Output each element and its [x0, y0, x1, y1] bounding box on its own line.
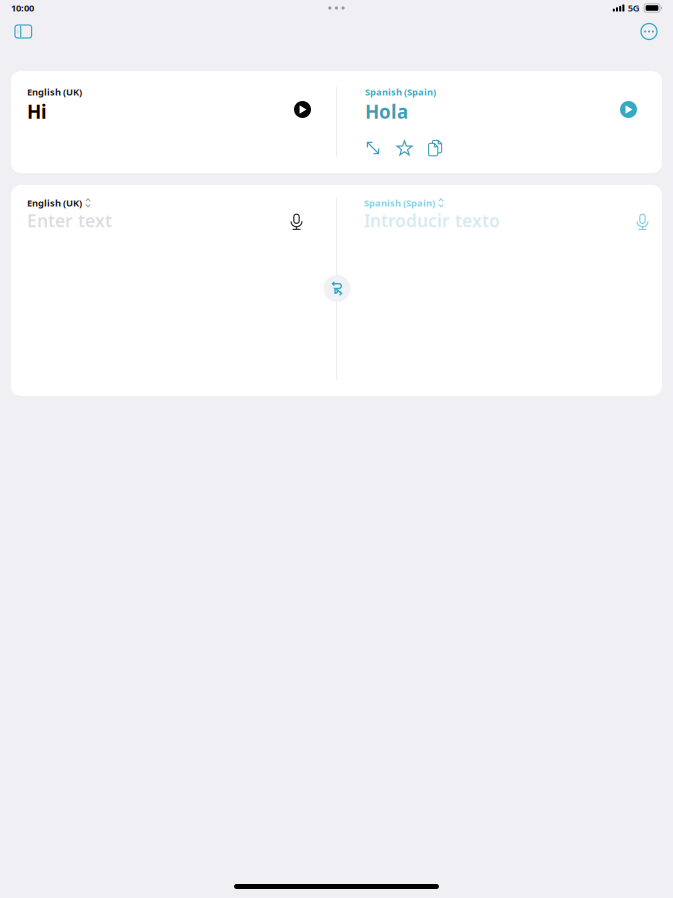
button[interactable]: Show Sidebar — [8, 18, 39, 45]
button[interactable]: Dictate English — [286, 210, 307, 234]
staticText: Hola — [365, 99, 408, 124]
button[interactable]: Copy — [428, 140, 444, 156]
staticText: Hi — [27, 99, 47, 124]
staticText: Enter text — [27, 209, 112, 232]
staticText: 5G — [628, 2, 640, 14]
staticText: Spanish (Spain) — [365, 86, 436, 98]
staticText: English (UK) — [27, 86, 82, 98]
staticText: 10:00 — [11, 2, 34, 14]
button[interactable]: Swap languages — [323, 275, 350, 302]
button[interactable]: More — [634, 16, 664, 46]
button[interactable]: Spanish (Spain) — [364, 197, 444, 209]
button[interactable]: Add to Favourites — [396, 140, 412, 156]
staticText: Introducir texto — [364, 209, 500, 232]
button[interactable]: Expand — [365, 140, 381, 156]
staticText: English (UK) — [27, 197, 82, 209]
button[interactable]: Dictate Spanish — [632, 210, 653, 234]
button[interactable]: Play Spanish — [618, 99, 639, 120]
button[interactable]: English (UK) — [27, 197, 91, 209]
staticText: Spanish (Spain) — [364, 197, 435, 209]
button[interactable]: Play English — [292, 99, 313, 120]
